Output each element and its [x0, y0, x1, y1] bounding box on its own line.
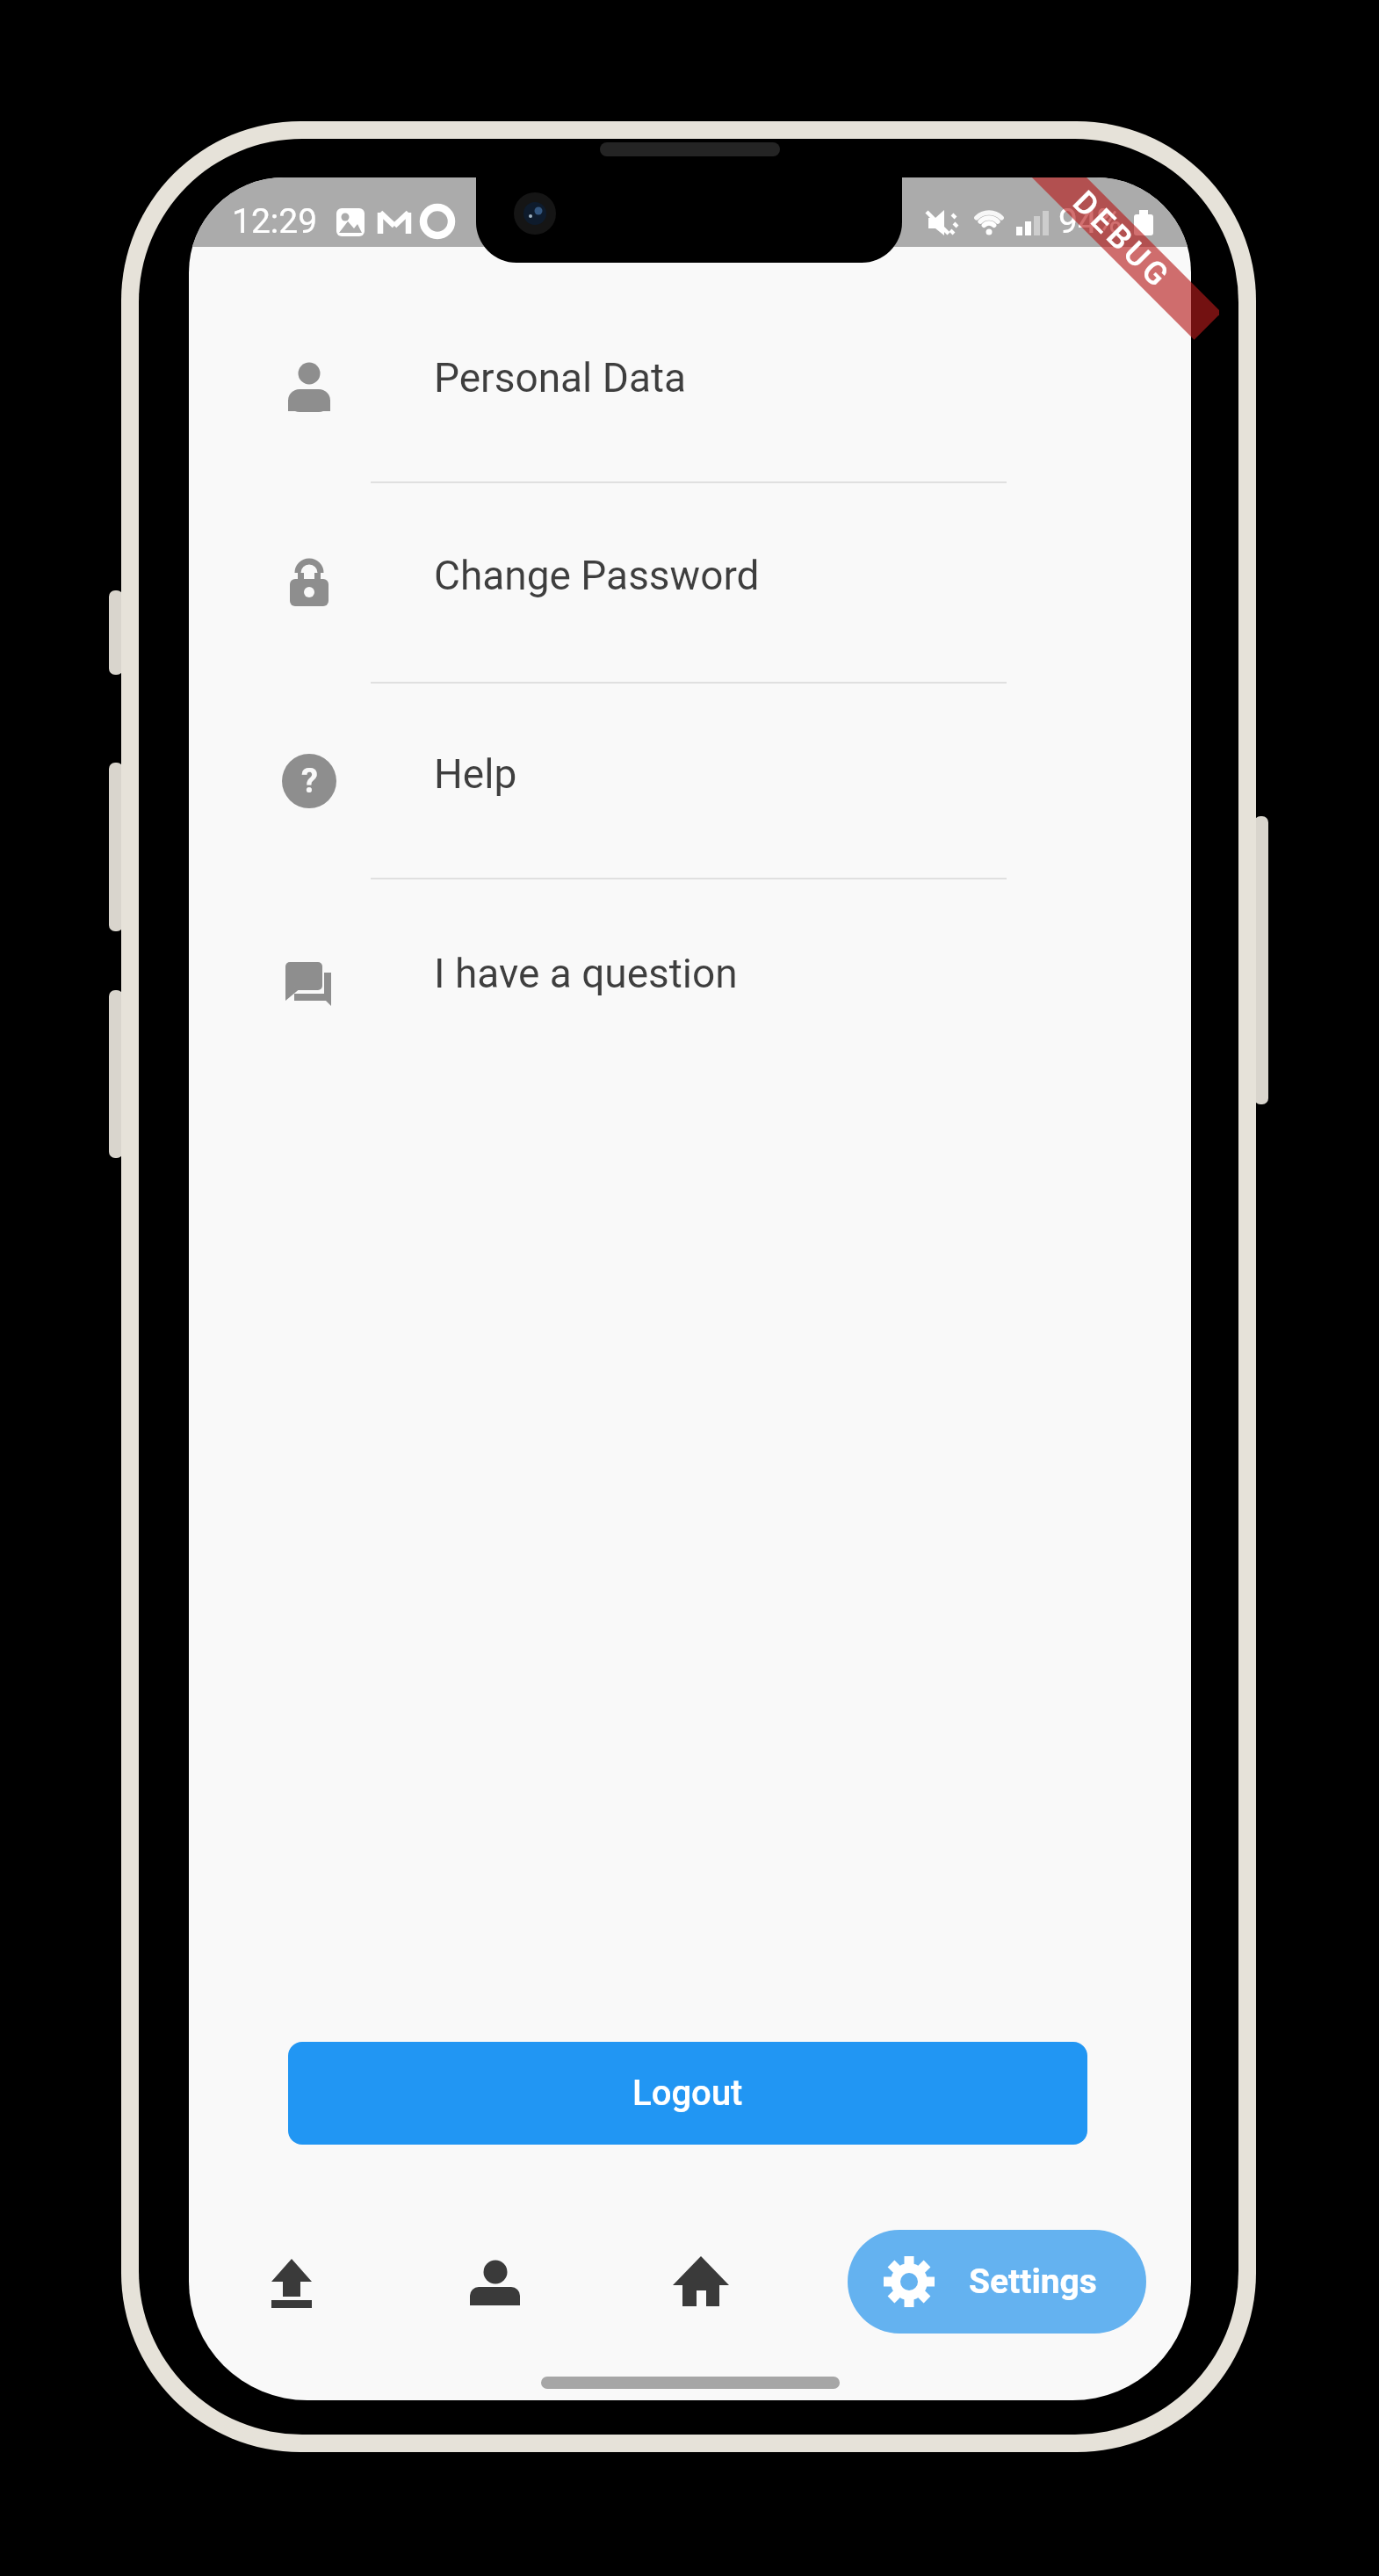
- staticText: Settings: [969, 2261, 1097, 2302]
- staticText: Personal Data: [434, 354, 686, 402]
- staticText: Help: [434, 750, 517, 798]
- button[interactable]: Change Password: [189, 517, 1191, 648]
- button[interactable]: [456, 2245, 535, 2324]
- button[interactable]: Settings: [848, 2230, 1146, 2334]
- button[interactable]: [661, 2245, 740, 2324]
- button[interactable]: Personal Data: [189, 319, 1191, 451]
- button[interactable]: I have a question: [189, 915, 1191, 1046]
- button[interactable]: [252, 2242, 331, 2321]
- staticText: 12:29: [232, 201, 318, 242]
- button[interactable]: Logout: [288, 2042, 1087, 2145]
- staticText: Logout: [632, 2073, 743, 2114]
- staticText: I have a question: [434, 950, 738, 997]
- staticText: DEBUG: [1066, 184, 1179, 297]
- staticText: ?: [301, 762, 318, 801]
- button[interactable]: ?: [189, 715, 1191, 847]
- staticText: Change Password: [434, 552, 760, 599]
- staticText: 94%: [1058, 201, 1123, 242]
